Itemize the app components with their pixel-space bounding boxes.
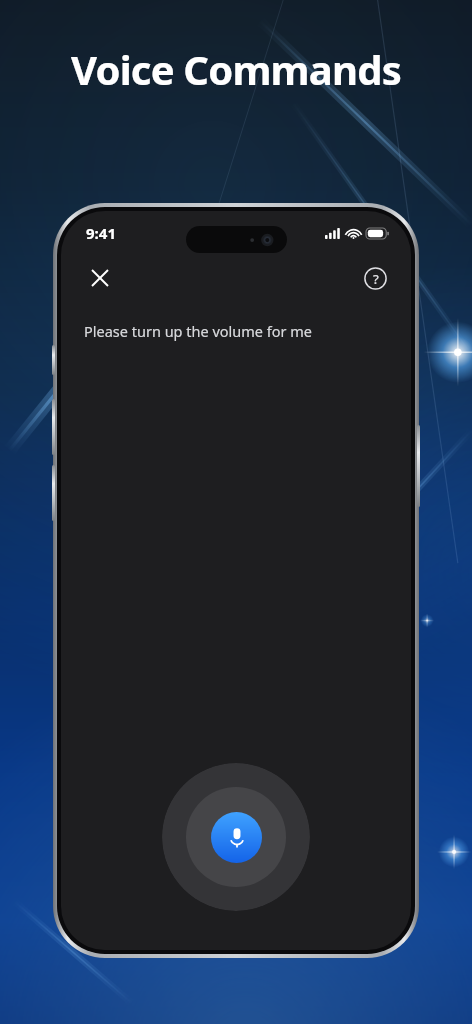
button[interactable]: Help — [358, 261, 392, 295]
staticText: Voice Commands — [71, 42, 401, 96]
staticText: Please turn up the volume for me — [84, 321, 313, 341]
button[interactable]: Close — [83, 261, 117, 295]
staticText: 9:41 — [86, 223, 116, 243]
staticText: ? — [373, 270, 379, 288]
button[interactable]: Start voice input — [162, 763, 310, 911]
